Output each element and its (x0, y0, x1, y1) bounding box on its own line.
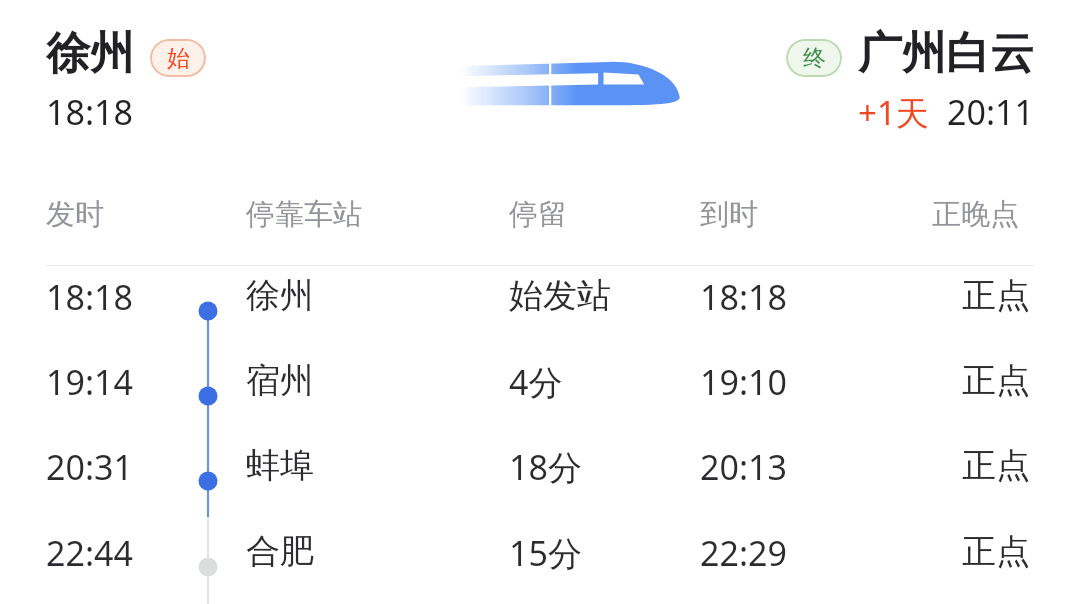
staticText: 正晚点 (932, 196, 1019, 233)
staticText: 发时 (46, 196, 104, 233)
staticText: 正点 (962, 444, 1030, 487)
staticText: 22:44 (46, 530, 133, 576)
staticText: 18:18 (700, 274, 787, 320)
staticText: +1天 (858, 90, 929, 135)
staticText: 20:31 (46, 444, 133, 490)
staticText: 终 (803, 44, 826, 73)
staticText: 22:29 (700, 530, 787, 576)
staticText: 停靠车站 (246, 196, 362, 233)
staticText: 18:18 (46, 274, 133, 320)
staticText: 18:18 (46, 89, 133, 135)
button[interactable]: 22:44 (0, 530, 1080, 604)
staticText: 宿州 (246, 359, 314, 402)
button[interactable]: 20:31 (0, 444, 1080, 518)
staticText: 广州白云 (858, 26, 1034, 81)
staticText: 始 (167, 44, 190, 73)
button[interactable]: 19:14 (0, 359, 1080, 433)
staticText: 合肥 (246, 530, 314, 573)
staticText: 20:11 (947, 89, 1034, 135)
staticText: 19:10 (700, 359, 787, 405)
staticText: 正点 (962, 530, 1030, 573)
staticText: 正点 (962, 359, 1030, 402)
staticText: 徐州 (246, 274, 314, 317)
button[interactable]: 徐州 (46, 26, 206, 135)
staticText: 20:13 (700, 444, 787, 490)
staticText: 到时 (700, 196, 758, 233)
staticText: 始发站 (509, 274, 611, 317)
staticText: 停留 (509, 196, 567, 233)
staticText: 徐州 (46, 26, 134, 81)
staticText: 15分 (509, 530, 582, 576)
staticText: 19:14 (46, 359, 133, 405)
button[interactable]: 18:18 (0, 274, 1080, 348)
staticText: 18分 (509, 444, 582, 490)
staticText: 正点 (962, 274, 1030, 317)
other: 高铁列车 (455, 52, 690, 114)
staticText: 蚌埠 (246, 444, 314, 487)
button[interactable]: 终 (0, 26, 1034, 135)
staticText: 4分 (509, 359, 563, 405)
